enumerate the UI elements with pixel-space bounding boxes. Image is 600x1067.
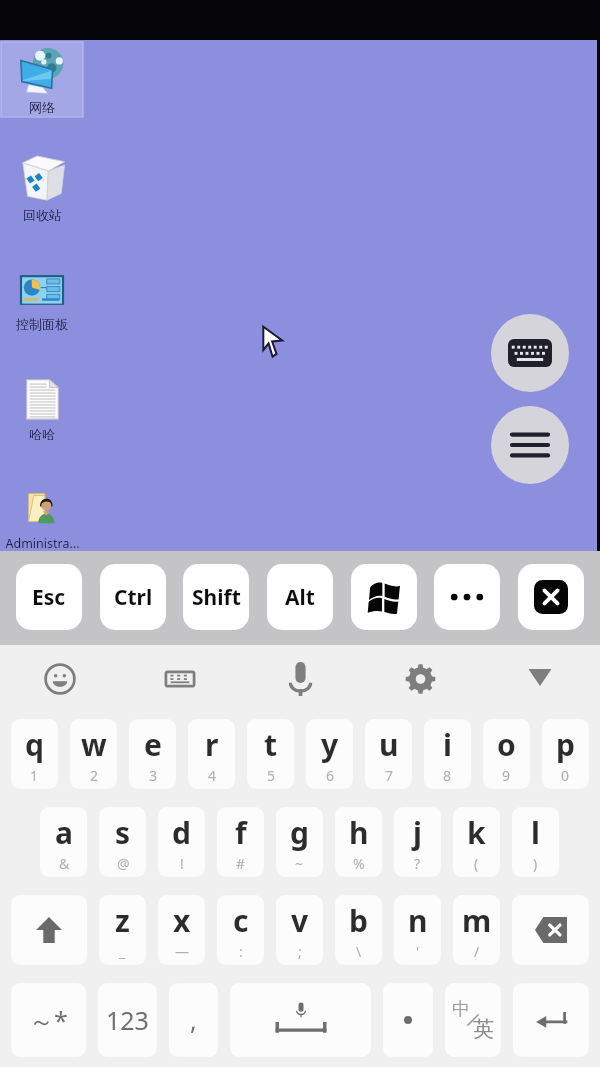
staticText: m: [462, 900, 492, 941]
button[interactable]: Switch Chinese English: [445, 983, 501, 1057]
button[interactable]: Switch keyboard: [120, 645, 240, 710]
button[interactable]: More options: [434, 564, 500, 630]
button[interactable]: s: [99, 807, 146, 877]
staticText: 5: [267, 766, 276, 785]
staticText: h: [349, 812, 369, 853]
staticText: r: [205, 724, 219, 765]
button[interactable]: Enter: [513, 983, 589, 1057]
staticText: z: [115, 900, 130, 941]
button[interactable]: b: [335, 895, 382, 965]
staticText: ): [533, 854, 538, 873]
staticText: ～*: [29, 1003, 68, 1037]
button[interactable]: e: [129, 719, 176, 789]
button[interactable]: 控制面板: [1, 259, 83, 334]
button[interactable]: f: [217, 807, 264, 877]
button[interactable]: j: [394, 807, 441, 877]
button[interactable]: i: [424, 719, 471, 789]
button[interactable]: q: [11, 719, 58, 789]
staticText: v: [291, 900, 309, 941]
button[interactable]: o: [483, 719, 530, 789]
button[interactable]: Shift: [183, 564, 249, 630]
button[interactable]: Administra...: [1, 478, 83, 553]
staticText: ~: [295, 854, 304, 873]
staticText: n: [408, 900, 428, 941]
button[interactable]: Hide keyboard: [480, 645, 600, 710]
button[interactable]: Shift: [11, 895, 87, 965]
button[interactable]: Backspace: [512, 895, 589, 965]
staticText: e: [144, 724, 162, 765]
button[interactable]: Space: [230, 983, 371, 1057]
staticText: ?: [414, 854, 421, 873]
button[interactable]: 网络: [1, 42, 83, 117]
button[interactable]: u: [365, 719, 412, 789]
staticText: p: [556, 724, 575, 765]
staticText: l: [531, 812, 540, 853]
staticText: :: [239, 942, 243, 961]
staticText: a: [55, 812, 73, 853]
button[interactable]: Voice input: [240, 645, 360, 710]
staticText: #: [236, 854, 246, 873]
button[interactable]: Period: [383, 983, 433, 1057]
button[interactable]: 哈哈: [1, 369, 83, 444]
staticText: w: [81, 724, 107, 765]
staticText: Ctrl: [114, 583, 153, 612]
button[interactable]: r: [188, 719, 235, 789]
staticText: Alt: [285, 583, 315, 612]
staticText: g: [290, 812, 309, 853]
button[interactable]: w: [70, 719, 117, 789]
button[interactable]: v: [276, 895, 323, 965]
staticText: q: [25, 724, 44, 765]
staticText: i: [443, 724, 452, 765]
staticText: &: [59, 854, 70, 873]
staticText: s: [115, 812, 131, 853]
button[interactable]: Windows key: [351, 564, 417, 630]
staticText: 英: [473, 1016, 494, 1042]
staticText: 控制面板: [16, 316, 68, 332]
staticText: u: [379, 724, 399, 765]
staticText: !: [180, 854, 184, 873]
button[interactable]: Esc: [16, 564, 82, 630]
staticText: k: [467, 812, 486, 853]
staticText: j: [413, 812, 422, 853]
button[interactable]: g: [276, 807, 323, 877]
staticText: 1: [30, 766, 39, 785]
button[interactable]: Menu: [491, 406, 569, 484]
button[interactable]: Keyboard settings: [360, 645, 480, 710]
staticText: (: [474, 854, 479, 873]
button[interactable]: c: [217, 895, 264, 965]
button[interactable]: l: [512, 807, 559, 877]
button[interactable]: Alt: [267, 564, 333, 630]
button[interactable]: d: [158, 807, 205, 877]
button[interactable]: x: [158, 895, 205, 965]
button[interactable]: y: [306, 719, 353, 789]
button[interactable]: m: [453, 895, 500, 965]
staticText: _: [119, 942, 126, 961]
staticText: ;: [298, 942, 302, 961]
button[interactable]: Close toolbar: [518, 564, 584, 630]
button[interactable]: t: [247, 719, 294, 789]
staticText: 哈哈: [29, 426, 55, 442]
button[interactable]: a: [40, 807, 87, 877]
button[interactable]: p: [542, 719, 589, 789]
staticText: @: [117, 854, 130, 873]
button[interactable]: h: [335, 807, 382, 877]
button[interactable]: Show keyboard: [491, 314, 569, 392]
staticText: Shift: [192, 583, 241, 612]
staticText: 中: [452, 998, 470, 1021]
button[interactable]: 回收站: [1, 150, 83, 225]
staticText: %: [353, 854, 365, 873]
staticText: 123: [106, 1003, 149, 1037]
button[interactable]: n: [394, 895, 441, 965]
button[interactable]: ～*: [11, 983, 86, 1057]
staticText: 7: [385, 766, 394, 785]
button[interactable]: ,: [169, 983, 218, 1057]
staticText: d: [172, 812, 191, 853]
button[interactable]: z: [99, 895, 146, 965]
button[interactable]: Emoji: [0, 645, 120, 710]
button[interactable]: 123: [98, 983, 157, 1057]
button[interactable]: Ctrl: [100, 564, 166, 630]
button[interactable]: k: [453, 807, 500, 877]
staticText: 4: [208, 766, 217, 785]
staticText: 网络: [29, 99, 55, 115]
staticText: b: [349, 900, 368, 941]
